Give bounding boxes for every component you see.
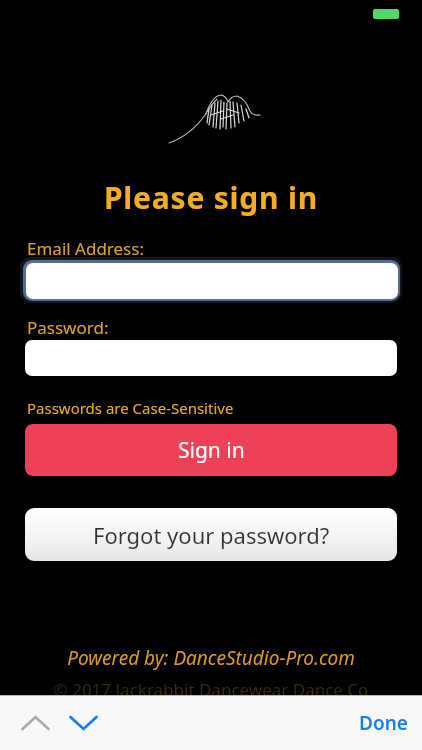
staticText: Passwords are Case-Sensitive (27, 398, 234, 418)
staticText: Sign in (178, 436, 245, 465)
staticText: Please sign in (0, 177, 422, 218)
button[interactable]: Done (353, 704, 414, 742)
button[interactable]: Sign in (25, 424, 397, 476)
button[interactable]: Forgot your password? (25, 508, 397, 561)
staticText: Done (359, 710, 408, 736)
button[interactable] (25, 340, 397, 376)
button[interactable] (59, 701, 107, 745)
button[interactable] (26, 263, 398, 299)
staticText: Powered by: DanceStudio-Pro.com (0, 645, 422, 671)
staticText: Password: (27, 316, 109, 339)
button[interactable] (11, 701, 59, 745)
staticText: Forgot your password? (93, 520, 330, 550)
staticText: Email Address: (27, 237, 144, 260)
staticText: © 2017 Jackrabbit Dancewear Dance Co (0, 678, 422, 701)
